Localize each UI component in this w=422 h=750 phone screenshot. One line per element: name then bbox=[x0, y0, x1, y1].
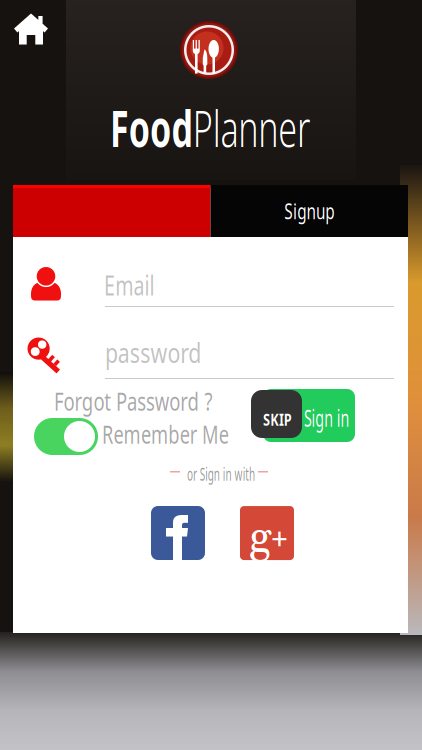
button[interactable]: Home bbox=[14, 12, 48, 46]
button[interactable]: Sign in with Google Plus bbox=[240, 507, 294, 561]
staticText: Food bbox=[110, 95, 230, 160]
staticText: Planner bbox=[230, 95, 400, 160]
button[interactable]: Sign in bbox=[263, 389, 355, 442]
button[interactable]: Signup bbox=[210, 185, 408, 237]
staticText: Email bbox=[104, 266, 176, 303]
staticText: Sign in bbox=[304, 403, 376, 433]
staticText: g bbox=[249, 511, 271, 567]
staticText: + bbox=[270, 520, 289, 557]
staticText: or Sign in with bbox=[187, 461, 315, 486]
button[interactable]: Sign in with Facebook bbox=[151, 506, 205, 560]
button[interactable]: Remember Me bbox=[34, 418, 98, 455]
staticText: Signup bbox=[284, 197, 354, 225]
staticText: Remember Me bbox=[102, 417, 278, 451]
button[interactable]: Sign in bbox=[13, 185, 210, 237]
staticText: SKIP bbox=[263, 409, 299, 430]
button[interactable]: Forgot Password ? bbox=[54, 384, 271, 418]
button[interactable]: SKIP bbox=[251, 390, 302, 438]
staticText: Forgot Password ? bbox=[54, 384, 271, 418]
staticText: password bbox=[105, 335, 225, 370]
